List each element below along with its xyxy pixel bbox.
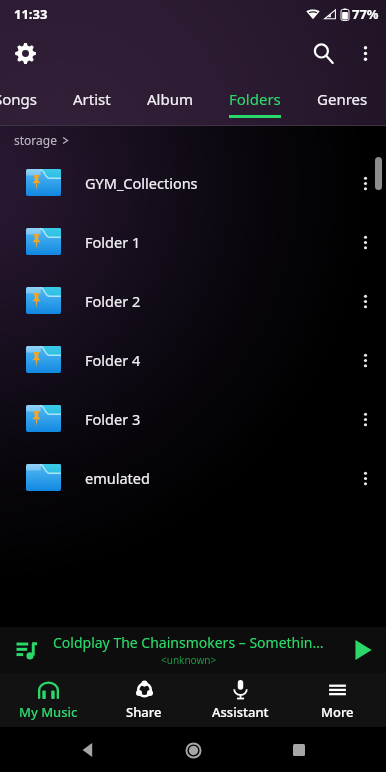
staticText: Genres: [317, 89, 368, 109]
button[interactable]: More options: [345, 281, 385, 321]
button[interactable]: Artist: [55, 78, 129, 125]
button[interactable]: Genres: [299, 78, 386, 125]
button[interactable]: More options: [345, 222, 385, 262]
staticText: Folder 4: [85, 350, 345, 370]
button[interactable]: Folder 3: [0, 389, 386, 448]
staticText: Album: [147, 89, 193, 109]
staticText: storage: [14, 132, 57, 148]
staticText: emulated: [85, 468, 345, 488]
button[interactable]: Folder 4: [0, 330, 386, 389]
button[interactable]: More options: [344, 32, 386, 74]
button[interactable]: More options: [345, 163, 385, 203]
staticText: My Music: [19, 703, 78, 721]
button[interactable]: Back: [70, 732, 106, 768]
staticText: <unknown>: [161, 653, 217, 667]
staticText: Folder 1: [85, 232, 345, 252]
button[interactable]: Search: [302, 32, 344, 74]
button[interactable]: Recents: [281, 732, 317, 768]
button[interactable]: More: [289, 673, 386, 727]
button[interactable]: My Music: [0, 673, 96, 727]
staticText: Folder 3: [85, 409, 345, 429]
staticText: Folder 2: [85, 291, 345, 311]
button[interactable]: emulated: [0, 448, 386, 507]
button[interactable]: Folder 1: [0, 212, 386, 271]
button[interactable]: Coldplay The Chainsmokers – Somethin…: [0, 627, 386, 673]
staticText: Songs: [0, 89, 37, 109]
button[interactable]: Folder 2: [0, 271, 386, 330]
staticText: More: [321, 703, 354, 721]
staticText: Artist: [73, 89, 111, 109]
button[interactable]: Share: [96, 673, 192, 727]
staticText: Coldplay The Chainsmokers – Somethin…: [53, 633, 324, 652]
staticText: 77%: [352, 5, 379, 23]
staticText: Share: [126, 703, 162, 721]
button[interactable]: More options: [345, 458, 385, 498]
button[interactable]: Play: [340, 627, 386, 673]
staticText: Folders: [229, 89, 281, 109]
button[interactable]: Folders: [211, 78, 299, 125]
staticText: Assistant: [212, 703, 269, 721]
staticText: 11:33: [14, 5, 48, 23]
button[interactable]: Assistant: [192, 673, 289, 727]
button[interactable]: Home: [175, 732, 211, 768]
button[interactable]: More options: [345, 340, 385, 380]
button[interactable]: Songs: [0, 78, 55, 125]
staticText: GYM_Collections: [85, 173, 345, 193]
button[interactable]: Album: [129, 78, 211, 125]
button[interactable]: More options: [345, 399, 385, 439]
button[interactable]: Settings: [7, 35, 43, 71]
button[interactable]: GYM_Collections: [0, 153, 386, 212]
